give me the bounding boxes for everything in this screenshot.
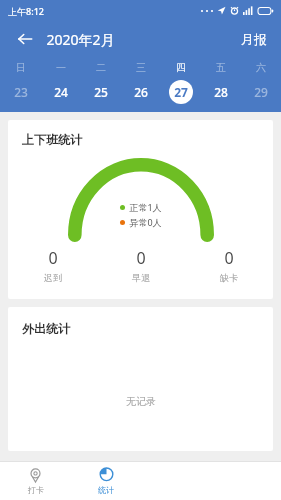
button[interactable]: 27: [161, 80, 201, 104]
staticText: 六: [256, 61, 266, 74]
staticText: 0: [48, 247, 58, 269]
staticText: 24: [54, 84, 68, 100]
staticText: 29: [254, 84, 268, 100]
button[interactable]: 0: [185, 247, 273, 283]
button[interactable]: Back: [12, 26, 38, 52]
button[interactable]: 0: [8, 247, 97, 283]
staticText: 27: [174, 84, 188, 100]
staticText: 2020年2月: [46, 30, 115, 49]
staticText: 23: [14, 84, 28, 100]
button[interactable]: 月报: [239, 27, 269, 51]
staticText: 三: [136, 61, 146, 74]
staticText: 二: [96, 61, 106, 74]
staticText: 日: [16, 61, 26, 74]
button[interactable]: 打卡: [0, 466, 71, 497]
staticText: 28: [214, 84, 228, 100]
staticText: 25: [94, 84, 108, 100]
staticText: 一: [56, 61, 66, 74]
button[interactable]: 0: [97, 247, 185, 283]
staticText: 迟到: [44, 272, 62, 283]
staticText: 26: [134, 84, 148, 100]
staticText: 五: [216, 61, 226, 74]
staticText: 上午8:12: [8, 5, 44, 17]
staticText: 上下班统计: [22, 132, 82, 147]
staticText: 月报: [241, 31, 267, 47]
staticText: 缺卡: [220, 272, 238, 283]
button[interactable]: 24: [41, 80, 81, 104]
staticText: 正常1人: [129, 201, 162, 213]
button[interactable]: 29: [241, 80, 281, 104]
staticText: 四: [176, 61, 186, 74]
button[interactable]: 23: [0, 80, 41, 104]
button[interactable]: 统计: [71, 466, 141, 497]
staticText: 无记录: [126, 395, 156, 408]
staticText: 打卡: [28, 485, 44, 495]
button[interactable]: 28: [201, 80, 241, 104]
staticText: 0: [136, 247, 146, 269]
staticText: 早退: [132, 272, 150, 283]
staticText: 统计: [98, 485, 114, 495]
staticText: 外出统计: [22, 321, 70, 336]
staticText: 0: [224, 247, 234, 269]
button[interactable]: 25: [81, 80, 121, 104]
button[interactable]: 26: [121, 80, 161, 104]
staticText: 异常0人: [129, 216, 162, 228]
